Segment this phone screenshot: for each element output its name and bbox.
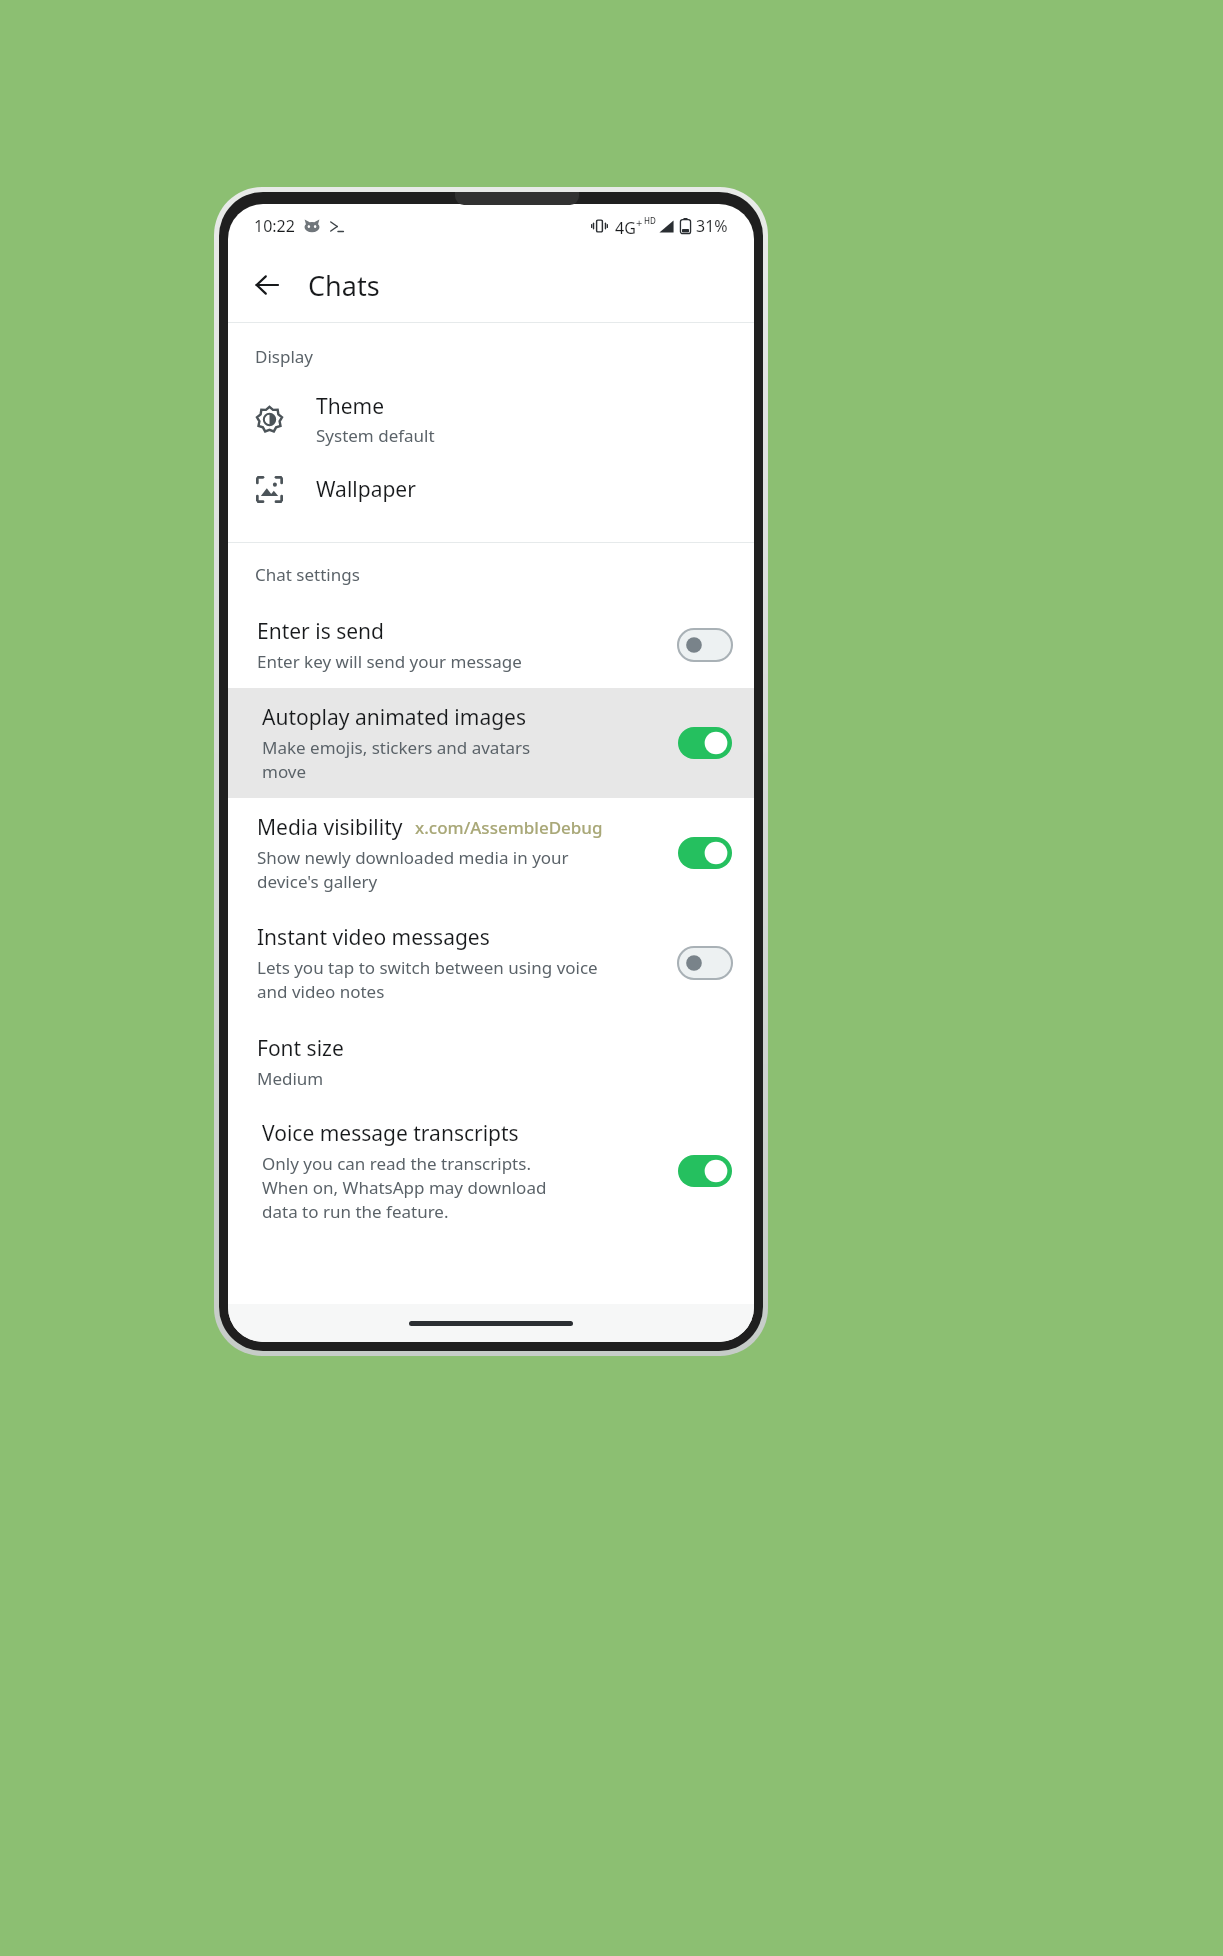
staticText: x.com/AssembleDebug [415, 816, 603, 839]
staticText: System default [316, 424, 435, 447]
staticText: Medium [257, 1067, 324, 1090]
staticText: Lets you tap to switch between using voi… [257, 956, 598, 1003]
staticText: 31% [696, 215, 728, 237]
staticText: Instant video messages [257, 923, 490, 952]
staticText: Make emojis, stickers and avatars move [262, 736, 531, 783]
staticText: Media visibility [257, 813, 403, 842]
staticText: 10:22 [254, 215, 295, 237]
staticText: Wallpaper [316, 475, 416, 504]
staticText: 4G [615, 217, 636, 239]
button[interactable]: Autoplay animated images [228, 688, 754, 798]
button[interactable]: Voice message transcripts [228, 1104, 754, 1238]
button[interactable]: Toggle on [678, 1155, 732, 1187]
button[interactable]: Media visibility [228, 798, 754, 908]
staticText: Show newly downloaded media in your devi… [257, 846, 569, 893]
staticText: Theme [316, 392, 384, 421]
button[interactable]: Toggle on [678, 837, 732, 869]
button[interactable]: Toggle on [678, 727, 732, 759]
button[interactable]: Font size [228, 1018, 754, 1104]
staticText: HD [644, 215, 656, 226]
button[interactable]: Theme [228, 384, 754, 457]
staticText: Enter key will send your message [257, 650, 522, 673]
button[interactable]: Toggle off [678, 947, 732, 979]
button[interactable]: Enter is send [228, 602, 754, 688]
staticText: Enter is send [257, 617, 384, 646]
staticText: Display [255, 345, 313, 368]
button[interactable]: Toggle off [678, 629, 732, 661]
button[interactable]: Instant video messages [228, 908, 754, 1018]
staticText: Autoplay animated images [262, 703, 527, 732]
staticText: Voice message transcripts [262, 1119, 519, 1148]
staticText: + [636, 215, 643, 230]
staticText: Chat settings [255, 563, 360, 586]
button[interactable]: Wallpaper [228, 457, 754, 522]
button[interactable]: Back [244, 262, 290, 308]
staticText: Only you can read the transcripts. When … [262, 1152, 547, 1223]
staticText: Chats [308, 267, 380, 304]
staticText: Font size [257, 1034, 344, 1063]
